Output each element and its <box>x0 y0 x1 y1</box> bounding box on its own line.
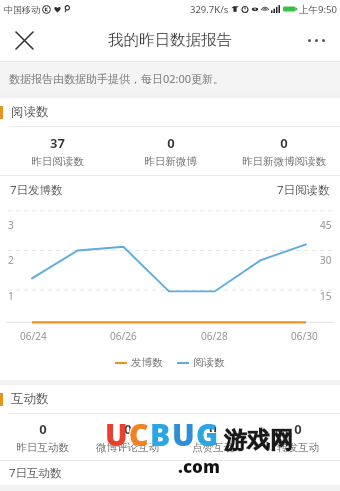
staticText: 3 <box>8 218 14 232</box>
staticText: U <box>105 414 128 455</box>
staticText: U <box>172 414 195 455</box>
staticText: 数据报告由数据助手提供，每日02:00更新。 <box>9 71 225 86</box>
staticText: 0 <box>167 134 175 152</box>
staticText: C <box>128 413 148 454</box>
button[interactable]: 0 <box>85 415 170 459</box>
staticText: 昨日新微博 <box>144 155 197 168</box>
staticText: 06/24 <box>20 329 47 343</box>
staticText: 7日互动数 <box>9 465 62 481</box>
staticText: 0 <box>39 420 47 438</box>
staticText: 7日发博数 <box>10 182 63 198</box>
staticText: 微博评论互动 <box>96 441 159 454</box>
staticText: 0 <box>294 420 302 438</box>
staticText: B <box>150 414 171 455</box>
staticText: 0 <box>280 134 288 152</box>
staticText: G <box>196 414 219 455</box>
staticText: 上午9:50 <box>299 3 337 16</box>
staticText: U <box>171 413 194 454</box>
button[interactable]: More options <box>300 24 332 56</box>
staticText: 329.7K/s <box>190 3 229 16</box>
staticText: 7日阅读数 <box>277 182 330 198</box>
staticText: 发博数 <box>131 356 163 369</box>
staticText: 互动数 <box>11 391 49 407</box>
staticText: G <box>195 413 218 454</box>
staticText: U <box>104 413 127 454</box>
staticText: 我的昨日数据报告 <box>108 30 232 50</box>
button[interactable]: Close <box>8 24 40 56</box>
staticText: 0 <box>209 420 217 438</box>
button[interactable]: 0 <box>114 129 227 173</box>
staticText: 1 <box>8 289 14 303</box>
button[interactable]: 0 <box>0 415 85 459</box>
button[interactable]: 0 <box>227 129 340 173</box>
staticText: 45 <box>320 218 332 232</box>
staticText: 昨日互动数 <box>16 441 69 454</box>
staticText: 昨日阅读数 <box>31 155 84 168</box>
staticText: 0 <box>124 420 132 438</box>
staticText: 30 <box>320 253 332 267</box>
staticText: 阅读数 <box>193 356 225 369</box>
button[interactable]: 0 <box>255 415 340 459</box>
staticText: 15 <box>320 289 332 303</box>
staticText: 游戏网 <box>224 426 293 455</box>
button[interactable]: 阅读数 <box>177 356 225 369</box>
staticText: B <box>149 413 170 454</box>
staticText: 阅读数 <box>11 104 49 120</box>
staticText: 昨日新微博阅读数 <box>242 155 326 168</box>
button[interactable]: 发博数 <box>115 356 163 369</box>
staticText: 点赞互动 <box>192 441 234 454</box>
staticText: 中国移动 <box>4 4 40 15</box>
staticText: 37 <box>50 134 65 152</box>
staticText: 06/28 <box>201 329 228 343</box>
staticText: 2 <box>8 253 14 267</box>
staticText: 06/26 <box>110 329 137 343</box>
staticText: 转发互动 <box>277 441 319 454</box>
button[interactable]: 37 <box>0 129 114 173</box>
staticText: .com <box>178 455 220 478</box>
staticText: 06/30 <box>291 329 318 343</box>
button[interactable]: 0 <box>170 415 255 459</box>
staticText: C <box>129 414 149 455</box>
